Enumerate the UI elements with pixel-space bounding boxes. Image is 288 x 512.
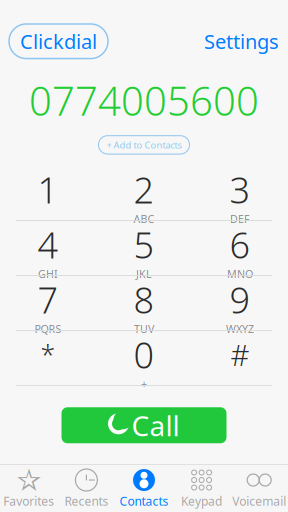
button[interactable]: 8 bbox=[96, 276, 192, 330]
staticText: Favorites bbox=[3, 493, 54, 509]
staticText: 5 bbox=[133, 221, 154, 268]
staticText: 7 bbox=[37, 276, 58, 323]
staticText: MNO bbox=[227, 267, 253, 281]
button[interactable]: 3 bbox=[192, 166, 288, 220]
button[interactable]: * bbox=[0, 331, 96, 385]
staticText: 3 bbox=[229, 166, 250, 213]
staticText: JKL bbox=[136, 267, 152, 281]
button[interactable]: 6 bbox=[192, 221, 288, 275]
staticText: Recents bbox=[64, 493, 108, 509]
staticText: * bbox=[40, 337, 55, 372]
staticText: # bbox=[230, 335, 249, 374]
staticText: 4 bbox=[37, 221, 58, 268]
button[interactable]: 4 bbox=[0, 221, 96, 275]
staticText: Keypad bbox=[181, 493, 222, 509]
staticText: 8 bbox=[133, 276, 154, 323]
button[interactable]: 2 bbox=[96, 166, 192, 220]
button[interactable]: + Add to Contacts bbox=[98, 136, 189, 154]
staticText: 0774005600 bbox=[29, 74, 259, 127]
button[interactable]: Call bbox=[61, 407, 226, 443]
staticText: ★ bbox=[15, 463, 42, 497]
button[interactable]: Recents bbox=[58, 466, 115, 510]
staticText: TUV bbox=[134, 322, 154, 336]
staticText: DEF bbox=[230, 212, 250, 226]
staticText: ★ bbox=[20, 469, 38, 491]
button[interactable]: ★ bbox=[0, 466, 58, 510]
staticText: Contacts bbox=[119, 493, 168, 509]
button[interactable]: 9 bbox=[192, 276, 288, 330]
button[interactable]: Keypad bbox=[173, 466, 230, 510]
button[interactable]: Settings bbox=[204, 24, 279, 59]
staticText: 9 bbox=[229, 276, 250, 323]
button[interactable]: Contacts bbox=[115, 466, 173, 510]
staticText: 1 bbox=[37, 166, 58, 213]
staticText: Call bbox=[131, 407, 179, 444]
staticText: + bbox=[141, 377, 147, 391]
staticText: PQRS bbox=[34, 322, 61, 336]
staticText: WXYZ bbox=[226, 322, 254, 336]
button[interactable]: 0 bbox=[96, 331, 192, 385]
staticText: GHI bbox=[38, 267, 58, 281]
staticText: + Add to Contacts bbox=[106, 139, 181, 151]
button[interactable]: 5 bbox=[96, 221, 192, 275]
staticText: Clickdial bbox=[20, 28, 97, 55]
button[interactable]: Clickdial bbox=[9, 24, 108, 59]
staticText: 0 bbox=[133, 331, 154, 378]
staticText: ABC bbox=[133, 212, 154, 226]
staticText: Settings bbox=[204, 28, 279, 55]
staticText: 6 bbox=[229, 221, 250, 268]
button[interactable]: # bbox=[192, 331, 288, 385]
staticText: 2 bbox=[133, 166, 154, 213]
button[interactable]: 1 bbox=[0, 166, 96, 220]
staticText: Voicemail bbox=[232, 493, 286, 509]
button[interactable]: 7 bbox=[0, 276, 96, 330]
button[interactable]: Voicemail bbox=[230, 466, 288, 510]
